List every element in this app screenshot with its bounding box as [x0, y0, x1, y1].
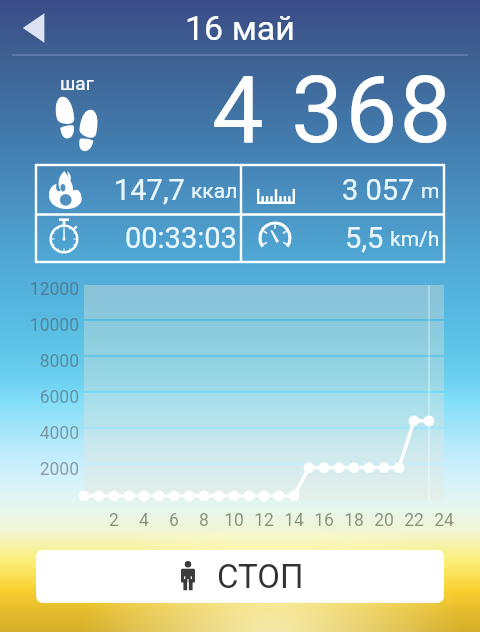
staticText: 2 [94, 510, 134, 531]
staticText: 00:33:03 [125, 221, 237, 255]
staticText: km/h [390, 227, 440, 252]
staticText: 20 [364, 510, 404, 531]
staticText: 16 [304, 510, 344, 531]
staticText: 18 [334, 510, 374, 531]
staticText: 12 [244, 510, 284, 531]
staticText: 147,7 [114, 173, 185, 207]
staticText: 22 [394, 510, 434, 531]
staticText: 6 [154, 510, 194, 531]
staticText: 4 368 [212, 57, 454, 165]
staticText: 3 057 [342, 173, 415, 207]
staticText: ккал [191, 179, 238, 204]
staticText: 4 [124, 510, 164, 531]
staticText: шаг [60, 72, 94, 94]
staticText: СТОП [217, 557, 304, 596]
staticText: 14 [274, 510, 314, 531]
staticText: 16 май [185, 8, 295, 48]
staticText: 8000 [0, 351, 79, 372]
staticText: 6000 [0, 387, 79, 408]
staticText: 2000 [0, 459, 79, 480]
staticText: 24 [424, 510, 464, 531]
staticText: 10000 [0, 315, 79, 336]
staticText: 4000 [0, 423, 79, 444]
staticText: 10 [214, 510, 254, 531]
staticText: 12000 [0, 279, 79, 300]
button[interactable]: СТОП [36, 550, 444, 603]
staticText: 8 [184, 510, 224, 531]
button[interactable]: Back [22, 12, 48, 44]
staticText: m [421, 179, 440, 204]
staticText: 5,5 [345, 221, 384, 255]
